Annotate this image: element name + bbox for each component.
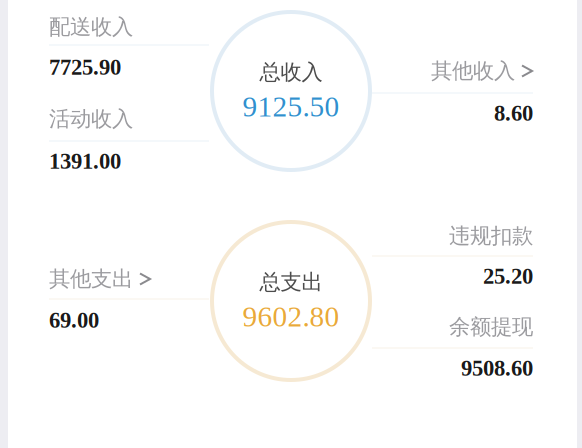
staticText: 其他支出 <box>49 266 133 292</box>
staticText: 25.20 <box>483 263 533 288</box>
staticText: 69.00 <box>49 307 99 332</box>
staticText: 总支出 <box>259 269 322 295</box>
staticText: 配送收入 <box>49 14 133 40</box>
button[interactable]: 余额提现 <box>0 0 582 448</box>
staticText: 9125.50 <box>242 90 339 123</box>
button[interactable]: 配送收入 <box>0 0 582 448</box>
button[interactable]: 其他收入 <box>0 0 582 448</box>
button[interactable]: 总收入 <box>219 19 363 163</box>
staticText: 1391.00 <box>49 148 121 173</box>
staticText: 活动收入 <box>49 106 133 132</box>
button[interactable]: 其他支出 <box>0 0 582 448</box>
staticText: 7725.90 <box>49 54 121 79</box>
staticText: 余额提现 <box>449 314 533 340</box>
staticText: 9602.80 <box>242 300 339 333</box>
staticText: 8.60 <box>494 100 533 125</box>
staticText: 总收入 <box>259 59 322 85</box>
staticText: 其他收入 <box>431 58 515 84</box>
button[interactable]: 违规扣款 <box>0 0 582 448</box>
staticText: 9508.60 <box>461 355 533 380</box>
staticText: 违规扣款 <box>449 223 533 249</box>
button[interactable]: 活动收入 <box>0 0 582 448</box>
button[interactable]: 总支出 <box>219 229 363 373</box>
